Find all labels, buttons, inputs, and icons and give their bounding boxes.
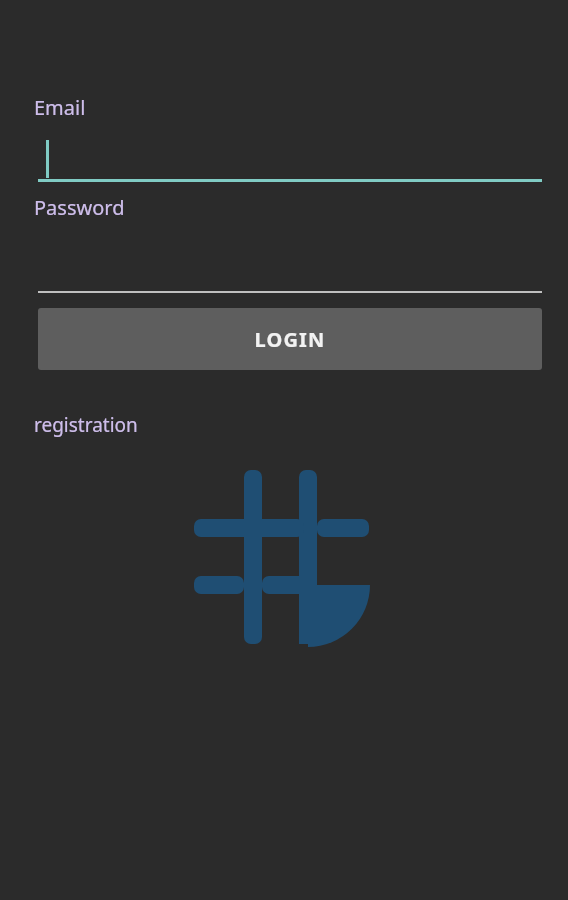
staticText: Password [34, 194, 125, 221]
other: App logo [186, 464, 376, 654]
button[interactable] [20, 269, 542, 293]
staticText: Email [34, 94, 86, 121]
button[interactable] [20, 138, 542, 182]
staticText: LOGIN [254, 326, 326, 353]
button[interactable]: LOGIN [38, 308, 542, 370]
button[interactable]: registration [34, 412, 138, 438]
staticText: registration [34, 412, 138, 438]
